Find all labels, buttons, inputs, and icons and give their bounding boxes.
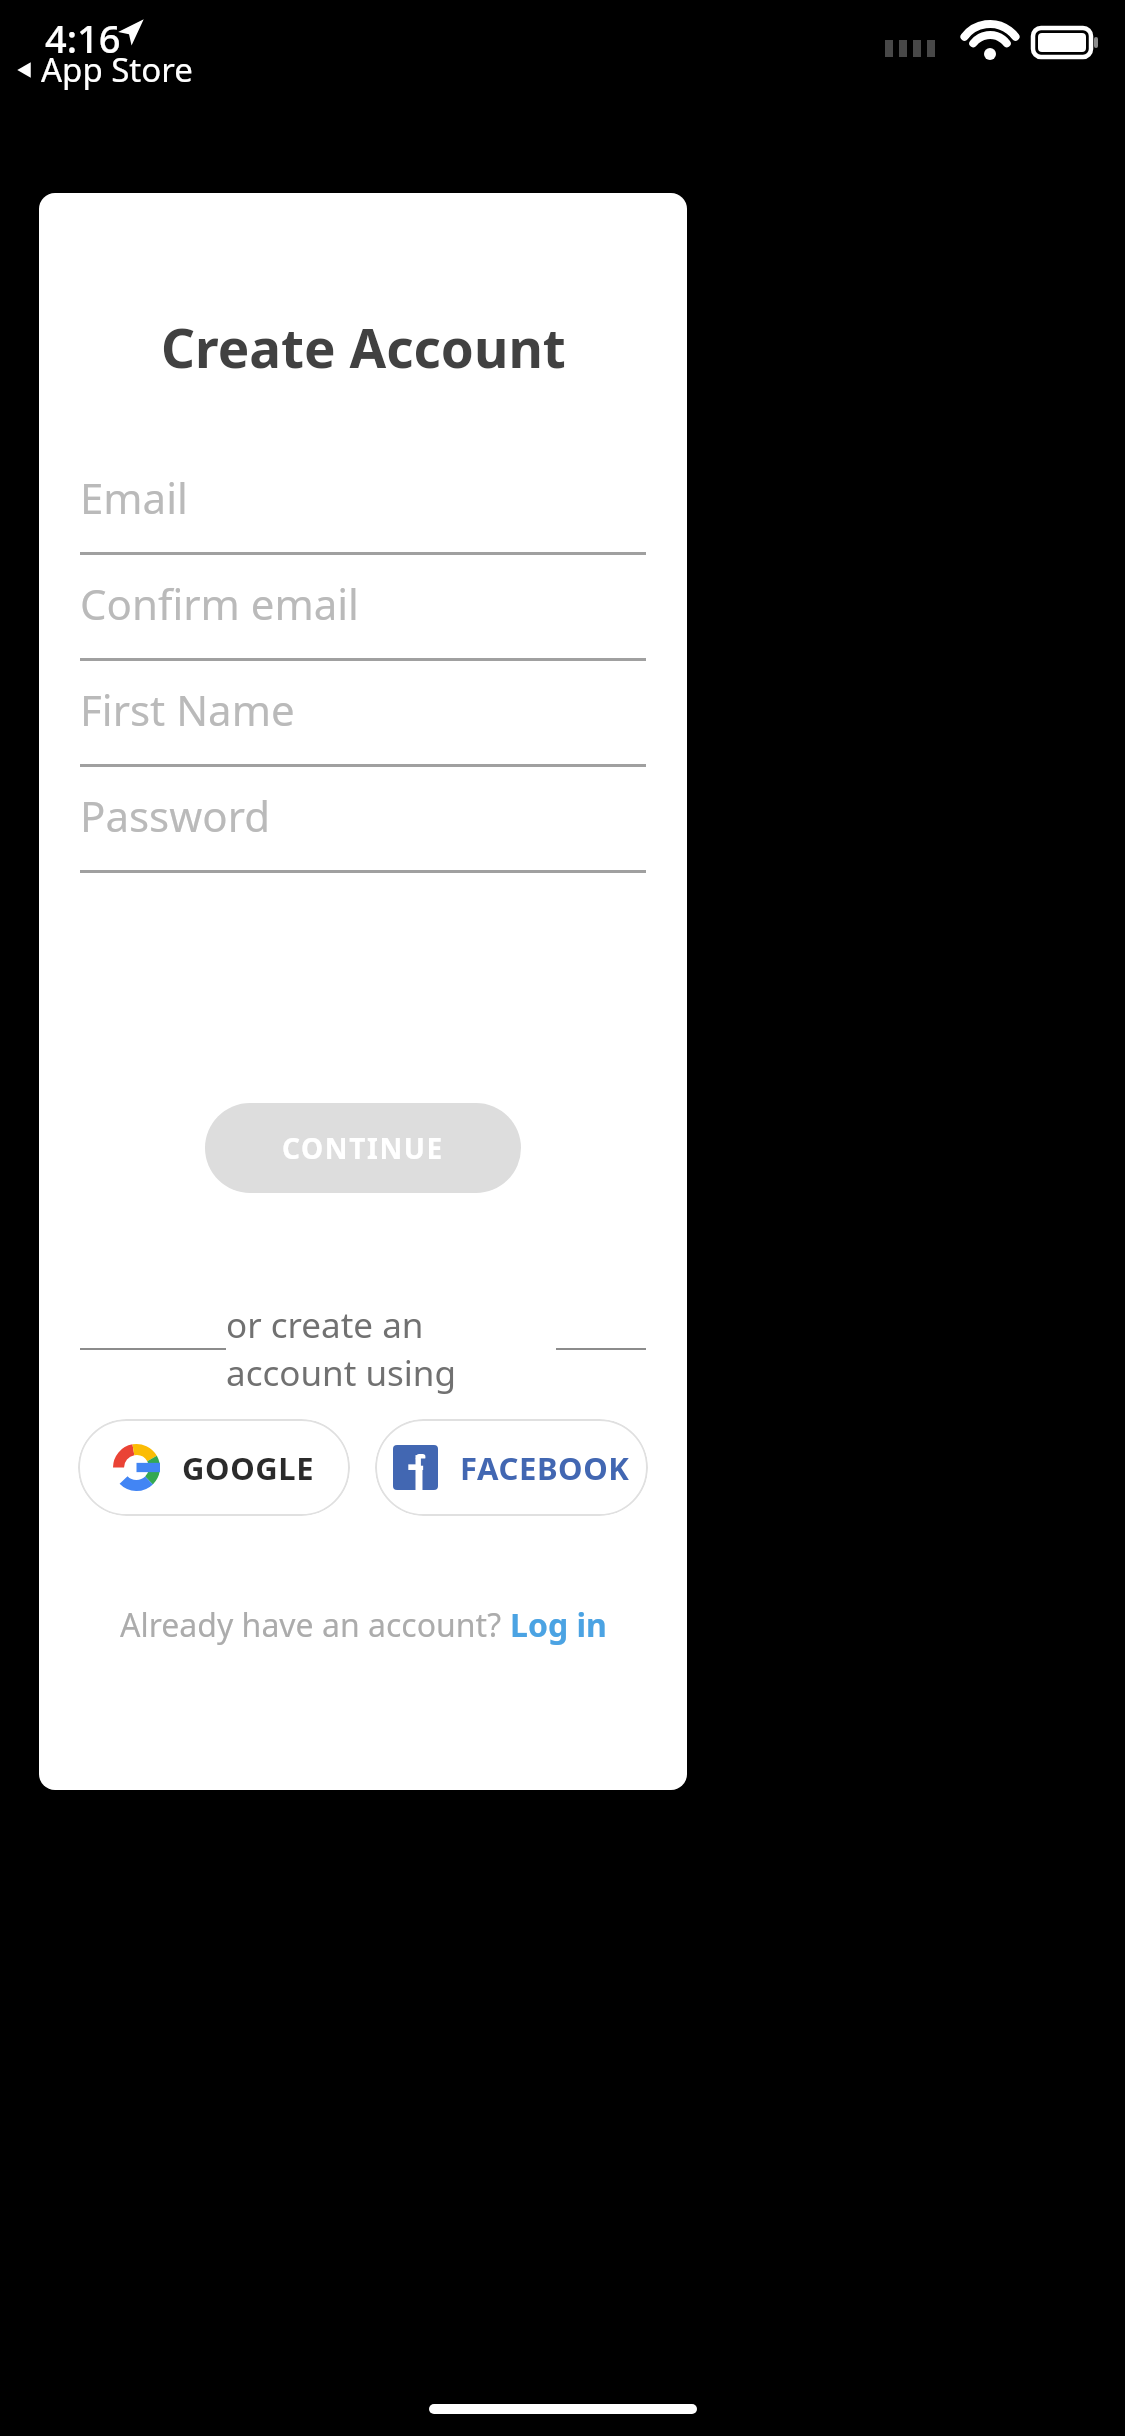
- button[interactable]: Facebook logo: [375, 1419, 648, 1516]
- button[interactable]: Google logo: [78, 1419, 350, 1516]
- staticText: First Name: [80, 681, 295, 738]
- button[interactable]: Log in: [510, 1603, 607, 1647]
- staticText: FACEBOOK: [460, 1447, 630, 1489]
- staticText: 4:16: [45, 12, 121, 64]
- staticText: Already have an account?: [120, 1603, 510, 1647]
- other: Google logo: [113, 1444, 160, 1491]
- staticText: CONTINUE: [282, 1129, 444, 1167]
- staticText: Email: [80, 469, 188, 526]
- other: Facebook logo: [393, 1445, 438, 1490]
- staticText: Password: [80, 787, 270, 844]
- staticText: App Store: [41, 47, 193, 92]
- button[interactable]: CONTINUE: [205, 1103, 521, 1193]
- button[interactable]: Email: [80, 455, 646, 555]
- staticText: Log in: [510, 1603, 607, 1647]
- staticText: Create Account: [161, 311, 566, 383]
- staticText: or create an account using: [226, 1301, 556, 1397]
- button[interactable]: Confirm email: [80, 561, 646, 661]
- button[interactable]: Password: [80, 773, 646, 873]
- staticText: Confirm email: [80, 575, 359, 632]
- button[interactable]: First Name: [80, 667, 646, 767]
- staticText: GOOGLE: [182, 1447, 315, 1489]
